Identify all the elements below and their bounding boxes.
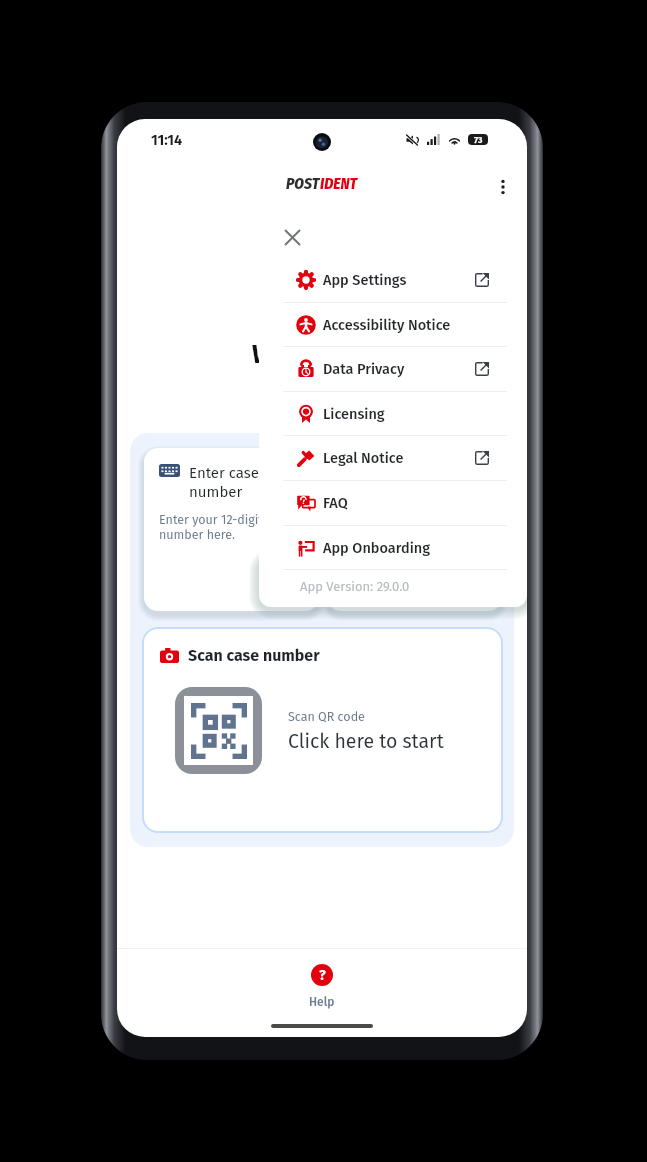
button[interactable]: App Onboarding: [259, 525, 527, 570]
staticText: ?: [319, 967, 326, 984]
staticText: Click here to start: [288, 730, 444, 753]
button[interactable]: Close: [280, 225, 304, 249]
staticText: Legal Notice: [323, 449, 404, 466]
staticText: POST: [286, 175, 320, 194]
button[interactable]: More options: [479, 163, 527, 211]
button[interactable]: Legal Notice: [259, 435, 527, 480]
staticText: Enter case number: [189, 464, 267, 501]
button[interactable]: FAQ: [259, 480, 527, 525]
staticText: Scan case number: [188, 646, 320, 665]
staticText: Enter your 12-digit case number here.: [159, 512, 313, 542]
button[interactable]: Data Privacy: [259, 346, 527, 391]
staticText: 73: [474, 135, 483, 145]
staticText: FAQ: [323, 494, 348, 511]
staticText: App Onboarding: [323, 539, 430, 556]
button[interactable]: Accessibility Notice: [259, 302, 527, 347]
staticText: IDENT: [320, 175, 358, 194]
button[interactable]: Scan case number: [144, 629, 501, 831]
button[interactable]: App Settings: [259, 257, 527, 302]
button[interactable]: Enter case number: [144, 448, 319, 611]
button[interactable]: ?: [117, 964, 527, 1009]
staticText: 11:14: [151, 131, 183, 148]
staticText: Help: [309, 995, 335, 1009]
staticText: Accessibility Notice: [323, 316, 451, 333]
button[interactable]: Licensing: [259, 391, 527, 436]
staticText: App Version: 29.0.0: [300, 579, 410, 595]
staticText: Licensing: [323, 405, 385, 422]
staticText: Willkommen: [252, 339, 400, 370]
staticText: App Settings: [323, 271, 407, 288]
button[interactable]: [327, 448, 502, 611]
staticText: Scan QR code: [288, 709, 365, 724]
staticText: Data Privacy: [323, 360, 405, 377]
